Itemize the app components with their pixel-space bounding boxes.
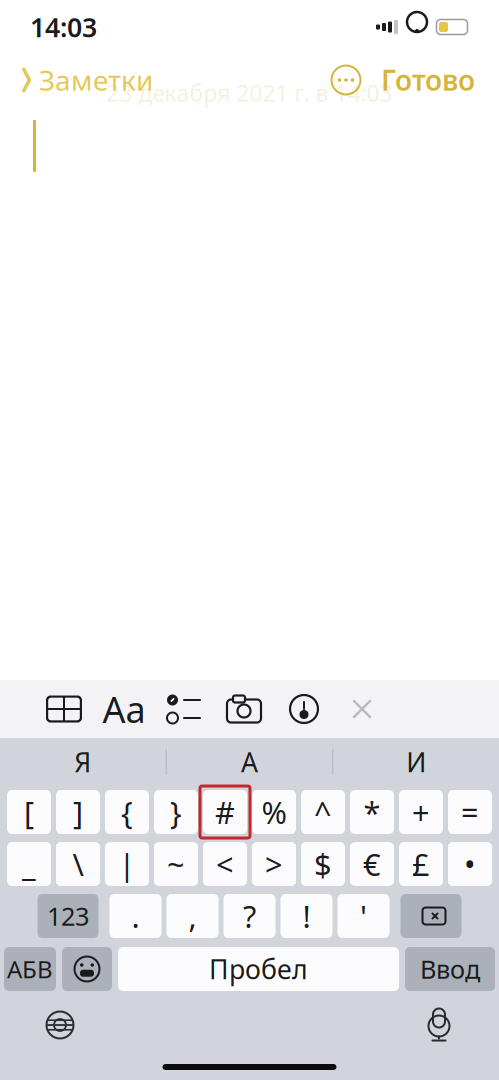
staticText: Пробел	[209, 951, 308, 987]
staticText: АБВ	[7, 953, 53, 985]
button[interactable]: {	[105, 790, 149, 834]
staticText: \	[72, 844, 83, 884]
staticText: %	[261, 792, 286, 832]
button[interactable]: +	[399, 790, 443, 834]
button[interactable]: Я	[0, 740, 166, 784]
button[interactable]: Формат	[94, 686, 154, 732]
staticText: _	[22, 844, 36, 884]
button[interactable]: !	[280, 894, 332, 938]
button[interactable]: =	[448, 790, 492, 834]
button[interactable]: ]	[56, 790, 100, 834]
button[interactable]: €	[350, 842, 394, 886]
button[interactable]: |	[105, 842, 149, 886]
button[interactable]: Заметки	[16, 55, 157, 105]
button[interactable]: _	[7, 842, 51, 886]
staticText: ^	[314, 792, 332, 832]
button[interactable]: Дополнительно	[329, 63, 363, 97]
staticText: И	[406, 744, 426, 780]
button[interactable]: Удалить	[400, 894, 461, 938]
button[interactable]: Сменить язык	[34, 1003, 86, 1047]
button[interactable]: АБВ	[4, 947, 56, 991]
staticText: |	[118, 844, 135, 884]
button[interactable]: ^	[301, 790, 345, 834]
button[interactable]: ~	[154, 842, 198, 886]
button[interactable]: *	[350, 790, 394, 834]
button[interactable]: Камера	[214, 686, 274, 732]
button[interactable]: #	[203, 790, 247, 834]
button[interactable]: %	[252, 790, 296, 834]
staticText: Aa	[102, 685, 145, 733]
button[interactable]: .	[109, 894, 161, 938]
staticText: 14:03	[30, 9, 97, 45]
staticText: >	[265, 844, 283, 884]
button[interactable]: >	[252, 842, 296, 886]
button[interactable]: И	[333, 740, 499, 784]
staticText: ]	[73, 792, 83, 832]
button[interactable]: Диктовка	[413, 1003, 465, 1047]
staticText: $	[314, 844, 332, 884]
staticText: Ввод	[420, 952, 480, 986]
staticText: <	[216, 844, 234, 884]
button[interactable]: [	[7, 790, 51, 834]
button[interactable]: ,	[166, 894, 218, 938]
button[interactable]: }	[154, 790, 198, 834]
button[interactable]: А	[167, 740, 332, 784]
staticText: !	[302, 896, 310, 936]
button[interactable]: Закрыть	[334, 686, 390, 732]
staticText: ?	[243, 896, 256, 936]
staticText: ~	[167, 844, 185, 884]
staticText: 123	[47, 899, 89, 933]
staticText: }	[170, 792, 182, 832]
staticText: .	[131, 896, 139, 936]
staticText: ,	[188, 896, 196, 936]
button[interactable]: '	[337, 894, 389, 938]
staticText: =	[461, 792, 479, 832]
button[interactable]: Таблица	[34, 686, 94, 732]
button[interactable]: 123	[37, 894, 98, 938]
staticText: #	[215, 792, 235, 832]
staticText: '	[360, 896, 367, 936]
button[interactable]: £	[399, 842, 443, 886]
button[interactable]: Готово	[373, 55, 483, 105]
staticText: +	[412, 792, 430, 832]
button[interactable]: Ввод	[405, 947, 495, 991]
staticText: Готово	[381, 61, 475, 99]
staticText: {	[121, 792, 133, 832]
button[interactable]: <	[203, 842, 247, 886]
button[interactable]: •	[448, 842, 492, 886]
button[interactable]: Эмодзи	[62, 947, 112, 991]
staticText: €	[363, 844, 381, 884]
staticText: [	[24, 792, 34, 832]
button[interactable]: Пробел	[118, 947, 399, 991]
button[interactable]: Разметка	[274, 686, 334, 732]
staticText: А	[241, 744, 258, 780]
staticText: Заметки	[39, 61, 153, 99]
staticText: *	[363, 792, 380, 832]
button[interactable]: Список	[154, 686, 214, 732]
staticText: •	[464, 844, 476, 884]
staticText: £	[412, 844, 430, 884]
button[interactable]: ?	[223, 894, 275, 938]
staticText: Я	[74, 744, 91, 780]
button[interactable]: \	[56, 842, 100, 886]
button[interactable]: $	[301, 842, 345, 886]
staticText: 23 декабря 2021 г. в 14:03	[106, 78, 392, 108]
